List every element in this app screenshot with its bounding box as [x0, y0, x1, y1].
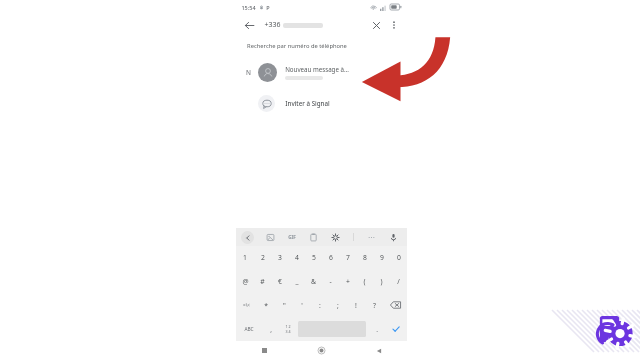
button[interactable]: More [367, 233, 376, 242]
staticText: ' [301, 301, 303, 310]
other: App logo badge [594, 310, 636, 352]
staticText: 3 [278, 253, 282, 262]
staticText: . [376, 325, 378, 334]
staticText: 9 [380, 253, 384, 262]
button[interactable]: Settings [331, 233, 340, 242]
staticText: , [270, 325, 272, 334]
staticText: +336 [264, 20, 281, 30]
button[interactable]: Clipboard [309, 233, 318, 242]
button[interactable]: Clear [369, 18, 383, 32]
button[interactable]: 6 [322, 246, 339, 269]
button[interactable]: 9 [373, 246, 390, 269]
staticText: 1 [243, 253, 247, 262]
staticText: 6 [329, 253, 333, 262]
button[interactable]: 2 [254, 246, 271, 269]
button[interactable]: ABC [236, 317, 262, 341]
button[interactable]: * [257, 293, 275, 317]
staticText: 15:54 [241, 4, 256, 11]
staticText: P [266, 4, 270, 11]
button[interactable]: Voice input [389, 233, 398, 242]
staticText: ? [373, 301, 376, 310]
button[interactable]: Recent apps [236, 341, 293, 360]
button[interactable]: _ [288, 269, 305, 293]
staticText: ! [355, 301, 357, 310]
staticText: 2 [261, 253, 265, 262]
button[interactable]: " [275, 293, 293, 317]
staticText: : [319, 301, 321, 310]
button[interactable]: 8 [356, 246, 373, 269]
button[interactable]: Backspace [383, 293, 407, 317]
staticText: 5 [312, 253, 316, 262]
button[interactable]: Expand toolbar [241, 231, 254, 244]
button[interactable]: , [262, 317, 279, 341]
button[interactable]: Inviter à Signal [235, 91, 407, 115]
staticText: ( [363, 277, 366, 286]
button[interactable]: : [311, 293, 329, 317]
button[interactable]: Stickers [266, 233, 275, 242]
button[interactable]: N [235, 59, 407, 85]
staticText: / [397, 277, 400, 286]
staticText: N [246, 68, 251, 77]
button[interactable]: More options [388, 19, 400, 31]
button[interactable]: 0 [390, 246, 407, 269]
button[interactable]: ' [293, 293, 311, 317]
staticText: + [346, 277, 350, 286]
staticText: =\< [243, 302, 250, 308]
staticText: 0 [397, 253, 401, 262]
button[interactable]: Back [350, 341, 407, 360]
button[interactable]: . [368, 317, 385, 341]
staticText: & [311, 277, 316, 286]
button[interactable]: 3 [271, 246, 288, 269]
staticText: - [329, 277, 332, 286]
button[interactable]: # [254, 269, 271, 293]
button[interactable]: 7 [339, 246, 356, 269]
staticText: 8 [363, 253, 367, 262]
staticText: 1 2 [285, 324, 291, 329]
button[interactable]: Home [293, 341, 350, 360]
button[interactable]: Enter [385, 317, 407, 341]
button[interactable]: ) [373, 269, 390, 293]
button[interactable]: 1 2 [279, 317, 296, 341]
staticText: _ [295, 277, 299, 286]
button[interactable]: ; [329, 293, 347, 317]
staticText: ABC [244, 326, 254, 333]
staticText: ) [380, 277, 383, 286]
button[interactable]: 4 [288, 246, 305, 269]
staticText: 3 4 [285, 329, 291, 334]
staticText: Nouveau message à… [285, 65, 349, 73]
button[interactable]: & [305, 269, 322, 293]
button[interactable]: ! [347, 293, 365, 317]
button[interactable]: 1 [236, 246, 254, 269]
button[interactable]: =\< [236, 293, 257, 317]
staticText: # [260, 277, 265, 286]
staticText: " [283, 301, 286, 310]
staticText: * [264, 301, 268, 310]
button[interactable]: - [322, 269, 339, 293]
button[interactable]: + [339, 269, 356, 293]
button[interactable]: / [390, 269, 407, 293]
button[interactable]: Back [242, 18, 256, 32]
staticText: GIF [288, 234, 296, 240]
staticText: 7 [346, 253, 350, 262]
staticText: Inviter à Signal [285, 99, 330, 107]
button[interactable]: GIF [288, 234, 296, 240]
staticText: @ [242, 277, 249, 286]
staticText: 4 [295, 253, 299, 262]
button[interactable]: ? [365, 293, 383, 317]
button[interactable]: ( [356, 269, 373, 293]
button[interactable]: € [271, 269, 288, 293]
staticText: € [278, 277, 282, 286]
button[interactable]: @ [236, 269, 254, 293]
staticText: Recherche par numéro de téléphone [247, 42, 347, 50]
staticText: ; [337, 301, 339, 310]
button[interactable]: 5 [305, 246, 322, 269]
